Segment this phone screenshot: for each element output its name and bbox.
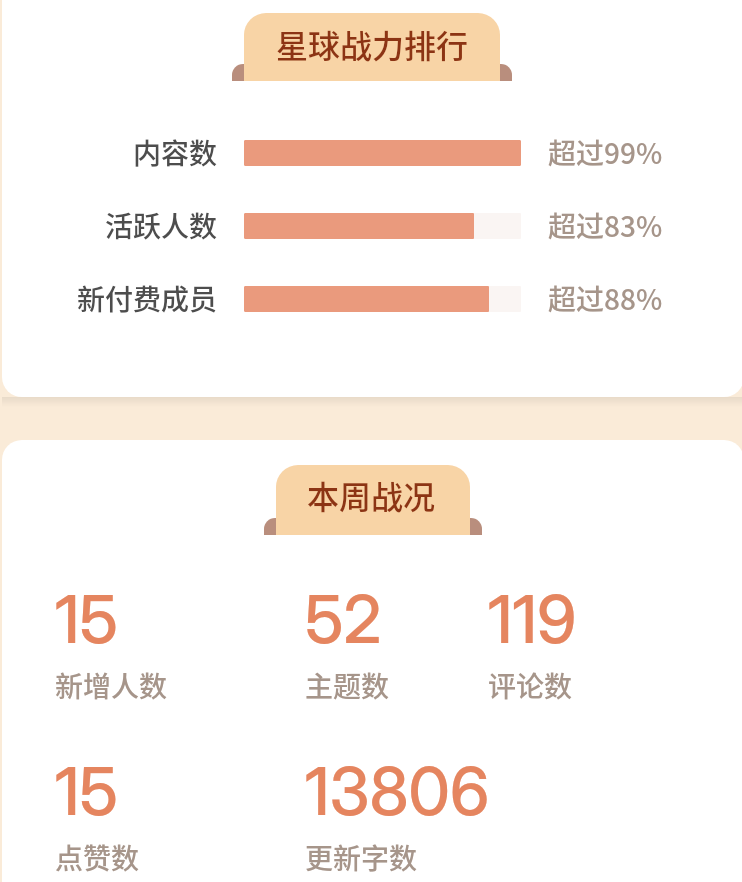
button[interactable]: 本周战况 (276, 465, 470, 535)
staticText: 本周战况 (307, 472, 436, 518)
button[interactable]: 13806 (305, 751, 505, 879)
button[interactable]: 活跃人数 (2, 189, 742, 262)
staticText: 52 (305, 579, 382, 659)
staticText: 超过83% (548, 205, 663, 246)
staticText: 主题数 (305, 665, 390, 706)
button[interactable]: 星球战力排行 (2, 0, 742, 397)
button[interactable]: 本周战况 (2, 440, 742, 882)
staticText: 内容数 (2, 132, 217, 173)
staticText: 13806 (305, 751, 490, 831)
button[interactable]: 119 (488, 579, 668, 707)
staticText: 新付费成员 (2, 278, 217, 319)
button[interactable]: 星球战力排行 (244, 13, 500, 81)
staticText: 119 (488, 579, 577, 659)
button[interactable]: 内容数 (2, 116, 742, 189)
staticText: 15 (55, 751, 119, 831)
staticText: 活跃人数 (2, 205, 217, 246)
staticText: 超过99% (548, 132, 663, 173)
button[interactable]: 15 (55, 751, 235, 879)
staticText: 点赞数 (55, 837, 140, 878)
staticText: 15 (55, 579, 119, 659)
staticText: 超过88% (548, 278, 663, 319)
staticText: 新增人数 (55, 665, 168, 706)
staticText: 星球战力排行 (276, 21, 469, 67)
button[interactable]: 15 (55, 579, 235, 707)
button[interactable]: 52 (305, 579, 485, 707)
staticText: 更新字数 (305, 837, 418, 878)
button[interactable]: 新付费成员 (2, 262, 742, 335)
staticText: 评论数 (488, 665, 573, 706)
